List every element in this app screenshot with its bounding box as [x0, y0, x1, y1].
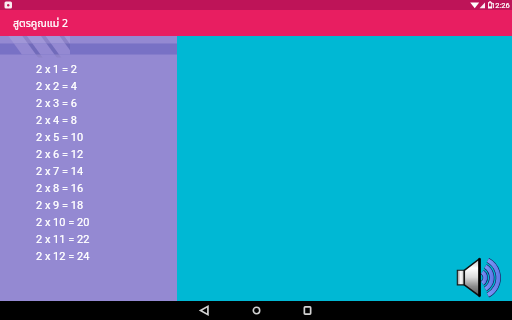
- staticText: 2 x 9 = 18: [36, 199, 84, 212]
- staticText: 2 x 6 = 12: [36, 148, 84, 161]
- staticText: 2 x 11 = 22: [36, 233, 90, 246]
- button[interactable]: Home: [237, 301, 275, 320]
- staticText: 2 x 4 = 8: [36, 114, 77, 127]
- staticText: 2 x 2 = 4: [36, 80, 77, 93]
- staticText: 2 x 1 = 2: [36, 63, 77, 76]
- button[interactable]: Recent apps: [289, 301, 326, 320]
- staticText: 2 x 3 = 6: [36, 97, 77, 110]
- button[interactable]: Back: [186, 301, 223, 320]
- button[interactable]: Play sound: [455, 256, 504, 300]
- staticText: 2 x 10 = 20: [36, 216, 90, 229]
- staticText: สูตรคูณแม่ 2: [13, 16, 68, 30]
- staticText: 2 x 7 = 14: [36, 165, 84, 178]
- staticText: 2 x 12 = 24: [36, 250, 90, 263]
- staticText: 2 x 8 = 16: [36, 182, 84, 195]
- staticText: 2 x 5 = 10: [36, 131, 84, 144]
- staticText: 12:26: [491, 1, 510, 10]
